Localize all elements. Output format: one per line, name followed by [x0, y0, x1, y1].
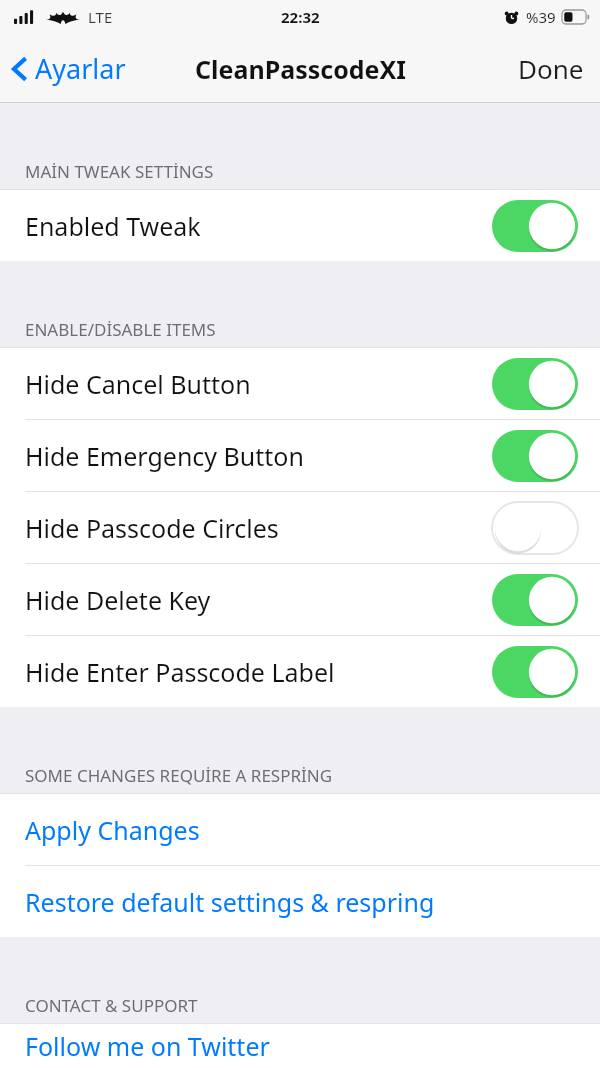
button[interactable]: Done [502, 43, 600, 94]
staticText: Done [518, 51, 584, 86]
button[interactable]: Hide Emergency Button [0, 420, 600, 491]
staticText: %39 [526, 7, 556, 27]
button[interactable]: Ayarlar [0, 44, 138, 93]
button[interactable]: On [492, 574, 578, 626]
staticText: Hide Emergency Button [25, 439, 492, 473]
staticText: Apply Changes [25, 813, 200, 847]
button[interactable]: Enabled Tweak [0, 190, 600, 261]
staticText: Restore default settings & respring [25, 885, 435, 919]
button[interactable]: Follow me on Twitter [0, 1024, 600, 1068]
staticText: Hide Cancel Button [25, 367, 492, 401]
staticText: LTE [88, 7, 113, 27]
button[interactable]: On [492, 646, 578, 698]
button[interactable]: On [492, 430, 578, 482]
button[interactable]: Restore default settings & respring [0, 866, 600, 937]
staticText: Hide Passcode Circles [25, 511, 492, 545]
button[interactable]: Hide Enter Passcode Label [0, 636, 600, 707]
staticText: Ayarlar [35, 50, 126, 87]
button[interactable]: Hide Delete Key [0, 564, 600, 635]
staticText: ENABLE/DİSABLE ITEMS [25, 318, 216, 341]
staticText: 22:32 [281, 7, 320, 27]
button[interactable]: Apply Changes [0, 794, 600, 865]
button[interactable]: Hide Passcode Circles [0, 492, 600, 563]
staticText: MAİN TWEAK SETTİNGS [25, 160, 214, 183]
staticText: Hide Delete Key [25, 583, 492, 617]
button[interactable]: On [492, 200, 578, 252]
staticText: SOME CHANGES REQUİRE A RESPRİNG [25, 764, 333, 787]
staticText: Hide Enter Passcode Label [25, 655, 492, 689]
staticText: CleanPasscodeXI [195, 52, 406, 86]
button[interactable]: On [492, 358, 578, 410]
button[interactable]: Off [492, 502, 578, 554]
staticText: CONTACT & SUPPORT [25, 994, 198, 1017]
button[interactable]: Hide Cancel Button [0, 348, 600, 419]
staticText: Follow me on Twitter [25, 1029, 270, 1063]
staticText: Enabled Tweak [25, 209, 492, 243]
